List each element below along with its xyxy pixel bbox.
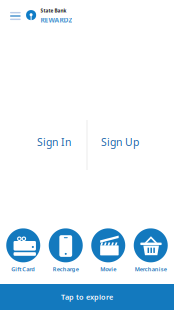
button[interactable]: Recharge (44, 228, 87, 273)
staticText: REWARDZ (40, 15, 72, 24)
staticText: Sign Up (101, 135, 139, 149)
button[interactable]: Sign Up (87, 120, 152, 170)
staticText: State Bank (40, 7, 66, 14)
button[interactable]: Sign In (21, 120, 86, 170)
button[interactable]: Gift Card (2, 228, 44, 273)
staticText: Movie (100, 265, 116, 273)
staticText: Recharge (53, 265, 79, 273)
button[interactable]: Tap to explore (0, 284, 174, 310)
staticText: Gift Card (11, 265, 35, 273)
button[interactable]: Movie (87, 228, 129, 273)
button[interactable]: Merchanise (129, 228, 172, 273)
button[interactable]: Menu (5, 5, 26, 27)
staticText: Sign In (37, 135, 71, 149)
staticText: Tap to explore (61, 292, 113, 302)
staticText: Merchanise (135, 265, 167, 273)
